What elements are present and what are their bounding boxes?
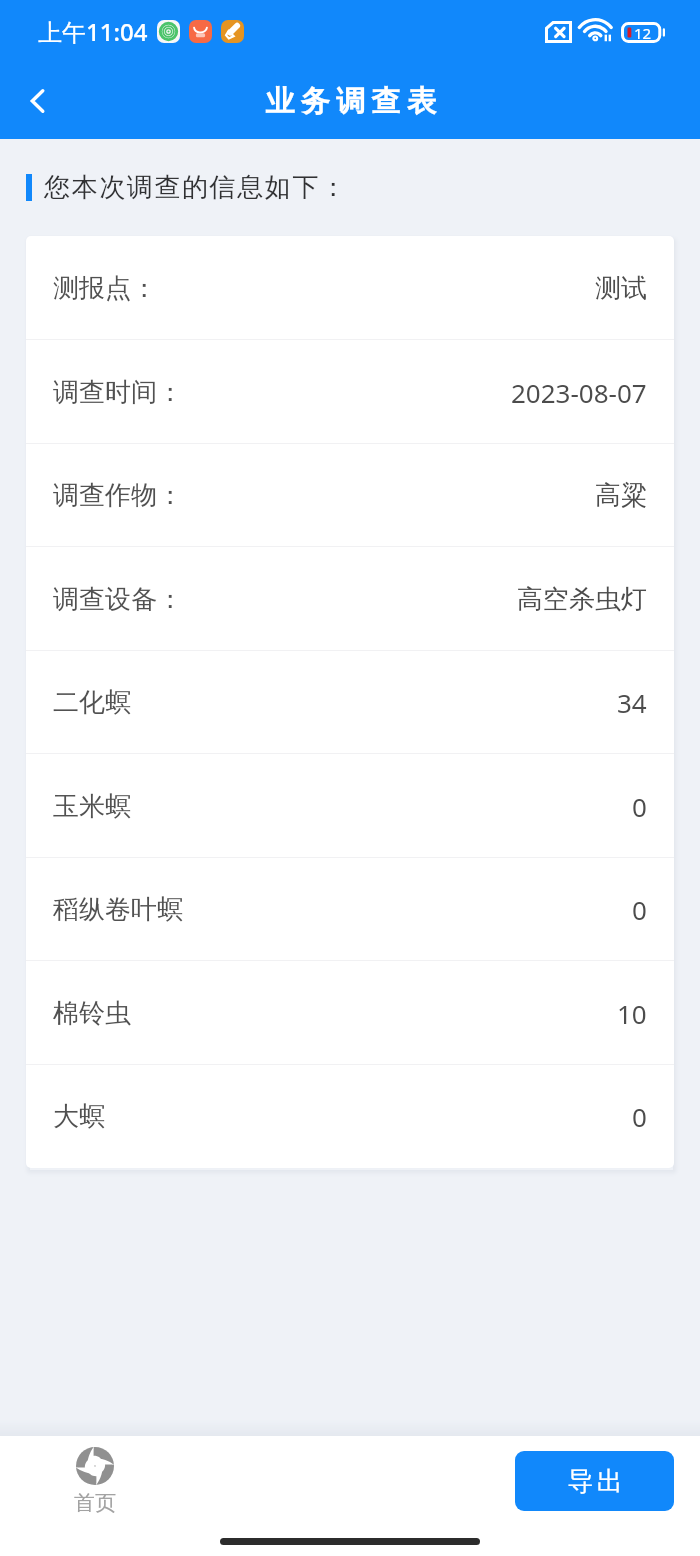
- staticText: 0: [632, 1099, 647, 1134]
- button[interactable]: 大螟: [26, 1064, 674, 1168]
- staticText: 首页: [74, 1490, 116, 1516]
- staticText: 导出: [566, 1465, 624, 1498]
- button[interactable]: 稻纵卷叶螟: [26, 857, 674, 961]
- staticText: 您本次调查的信息如下：: [44, 171, 348, 204]
- staticText: 高粱: [595, 479, 647, 512]
- staticText: 调查作物：: [53, 479, 183, 512]
- button[interactable]: 导出: [515, 1451, 674, 1511]
- button[interactable]: 调查设备：: [26, 547, 674, 651]
- staticText: 0: [632, 892, 647, 927]
- staticText: 0: [632, 789, 647, 824]
- staticText: 棉铃虫: [53, 997, 131, 1030]
- staticText: 34: [617, 685, 647, 720]
- button[interactable]: 玉米螟: [26, 754, 674, 858]
- staticText: 2023-08-07: [511, 375, 647, 410]
- staticText: 高空杀虫灯: [517, 583, 647, 616]
- staticText: 上午11:04: [38, 15, 148, 48]
- staticText: 调查设备：: [53, 583, 183, 616]
- button[interactable]: 测报点：: [26, 236, 674, 340]
- staticText: 稻纵卷叶螟: [53, 893, 183, 926]
- staticText: 12: [634, 23, 652, 43]
- staticText: 二化螟: [53, 686, 131, 719]
- staticText: 测报点：: [53, 272, 157, 305]
- button[interactable]: 调查作物：: [26, 443, 674, 547]
- staticText: 业务调查表: [262, 83, 439, 120]
- staticText: 测试: [595, 272, 647, 305]
- staticText: 玉米螟: [53, 790, 131, 823]
- button[interactable]: Back: [2, 65, 74, 137]
- staticText: 10: [617, 996, 647, 1031]
- button[interactable]: 调查时间：: [26, 340, 674, 444]
- staticText: 调查时间：: [53, 376, 183, 409]
- staticText: 大螟: [53, 1100, 105, 1133]
- button[interactable]: 二化螟: [26, 650, 674, 754]
- button[interactable]: 棉铃虫: [26, 961, 674, 1065]
- button[interactable]: 首页: [74, 1447, 116, 1516]
